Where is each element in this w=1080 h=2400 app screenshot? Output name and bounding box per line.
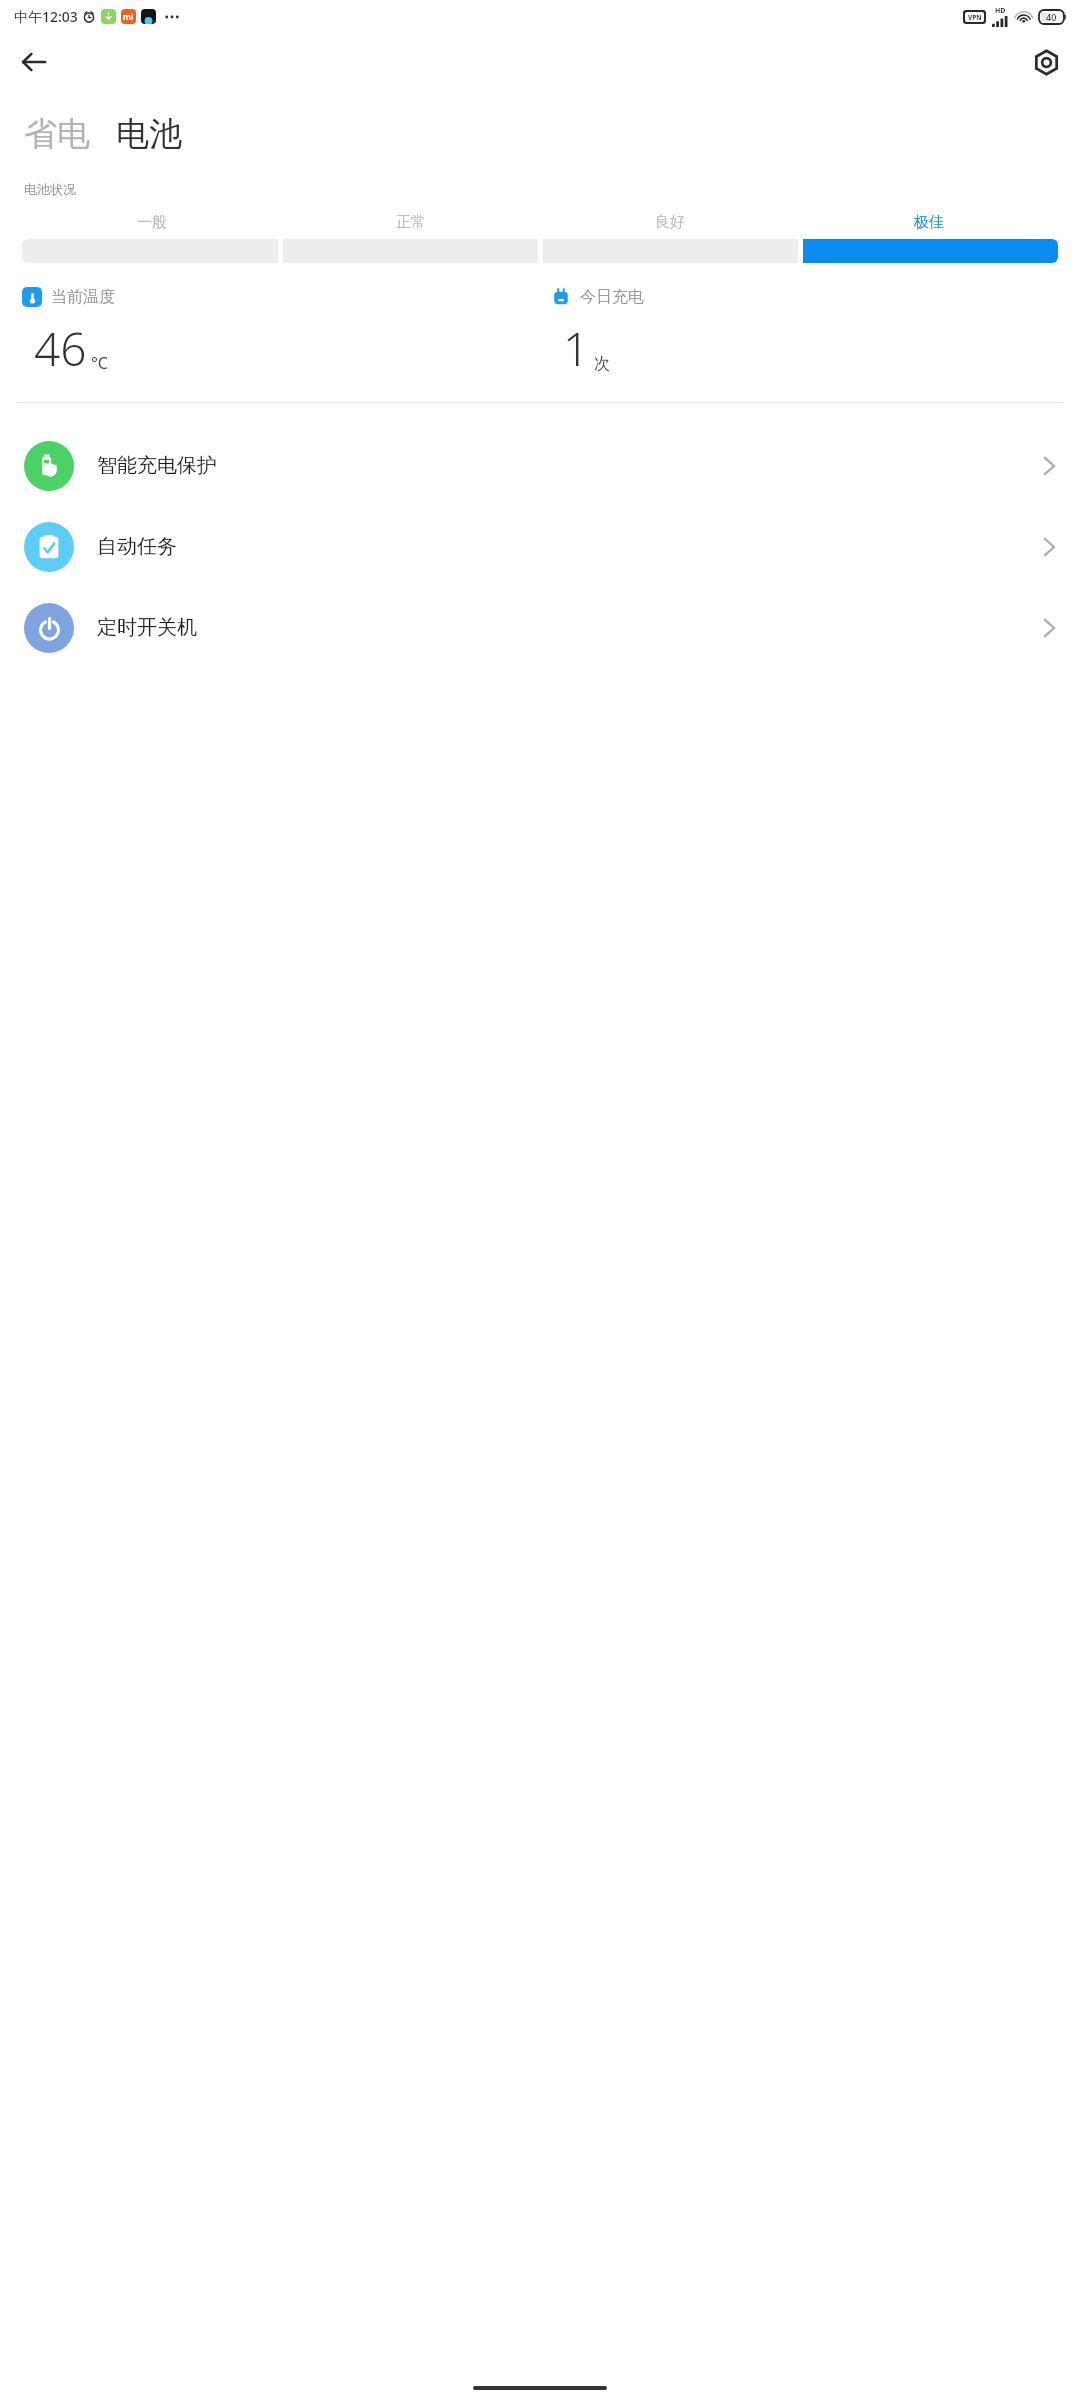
staticText: 定时开关机 <box>97 615 197 640</box>
staticText: 中午12:03 <box>14 7 78 26</box>
staticText: 极佳 <box>914 213 944 232</box>
staticText: °C <box>91 352 108 374</box>
staticText: VPN <box>968 13 982 22</box>
button[interactable]: 智能充电保护 <box>0 425 1080 506</box>
staticText: 电池状况 <box>24 181 76 197</box>
staticText: 自动任务 <box>97 534 177 559</box>
staticText: 今日充电 <box>580 287 644 307</box>
staticText: 正常 <box>396 213 426 232</box>
button[interactable]: 定时开关机 <box>0 587 1080 668</box>
button[interactable]: 电池 <box>114 113 184 155</box>
button[interactable]: Settings <box>1018 34 1074 90</box>
staticText: mi <box>123 11 134 22</box>
staticText: 良好 <box>655 213 685 232</box>
staticText: 一般 <box>137 213 167 232</box>
staticText: HD <box>995 6 1006 16</box>
staticText: 当前温度 <box>51 287 115 307</box>
staticText: 46 <box>34 317 87 380</box>
staticText: 40 <box>1046 11 1057 23</box>
staticText: 1 <box>563 317 590 380</box>
staticText: 电池 <box>116 113 182 155</box>
button[interactable]: Back <box>6 34 62 90</box>
staticText: 次 <box>594 354 610 374</box>
button[interactable]: 省电 <box>22 113 92 155</box>
staticText: 智能充电保护 <box>97 453 217 478</box>
button[interactable]: 自动任务 <box>0 506 1080 587</box>
staticText: 省电 <box>24 113 90 155</box>
button[interactable] <box>803 239 1058 263</box>
